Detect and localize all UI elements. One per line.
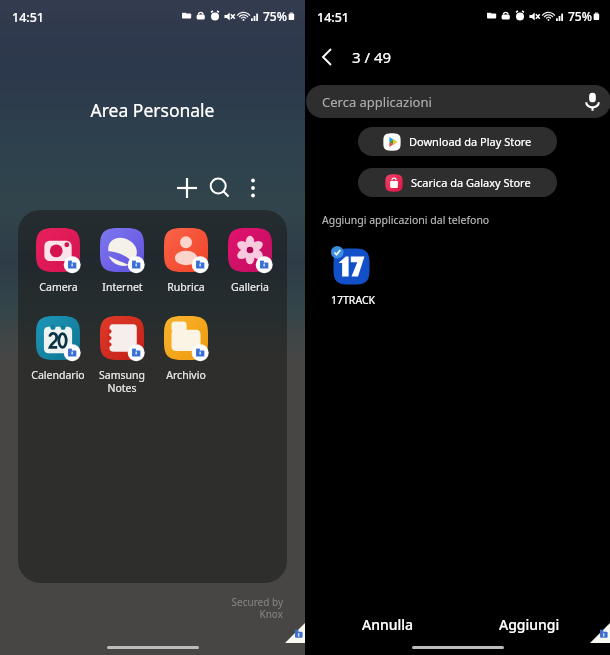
staticText: Galleria [231, 280, 269, 294]
button[interactable]: Voice search [582, 91, 603, 112]
staticText: 75% [263, 8, 287, 24]
staticText: Samsung Notes [99, 368, 145, 395]
button[interactable]: Aggiungi [471, 607, 588, 641]
staticText: Internet [102, 280, 143, 294]
button[interactable]: Samsung Notes [90, 311, 154, 395]
button[interactable]: Scarica da Galaxy Store [358, 168, 557, 197]
staticText: 75% [568, 8, 592, 24]
staticText: Area Personale [0, 98, 305, 122]
staticText: 17TRACK [331, 293, 376, 307]
staticText: 14:51 [317, 9, 350, 26]
button[interactable]: Add app [171, 172, 203, 204]
staticText: Rubrica [167, 280, 205, 294]
button[interactable]: Internet [90, 223, 154, 294]
button[interactable]: More options [237, 172, 269, 204]
button[interactable]: Rubrica [154, 223, 218, 294]
button[interactable]: Galleria [218, 223, 282, 294]
staticText: Archivio [166, 368, 206, 382]
staticText: 14:51 [12, 9, 45, 26]
staticText: 3 / 49 [352, 47, 392, 67]
staticText: Calendario [31, 368, 85, 382]
staticText: Aggiungi [499, 615, 560, 634]
button[interactable]: Camera [26, 223, 90, 294]
staticText: Aggiungi applicazioni dal telefono [322, 213, 490, 227]
staticText: Cerca applicazioni [322, 93, 432, 111]
staticText: Annulla [362, 615, 414, 634]
staticText: Scarica da Galaxy Store [411, 175, 531, 190]
button[interactable]: Cerca applicazioni [306, 85, 610, 118]
button[interactable]: Archivio [154, 311, 218, 382]
staticText: Camera [39, 280, 78, 294]
button[interactable]: Search [204, 172, 236, 204]
button[interactable]: Download da Play Store [358, 127, 557, 156]
button[interactable]: Back [311, 41, 343, 73]
button[interactable]: Calendario [26, 311, 90, 382]
staticText: Secured by Knox [0, 595, 283, 621]
button[interactable]: Annulla [305, 607, 471, 641]
button[interactable]: 17TRACK [323, 243, 383, 307]
staticText: Download da Play Store [409, 134, 532, 149]
